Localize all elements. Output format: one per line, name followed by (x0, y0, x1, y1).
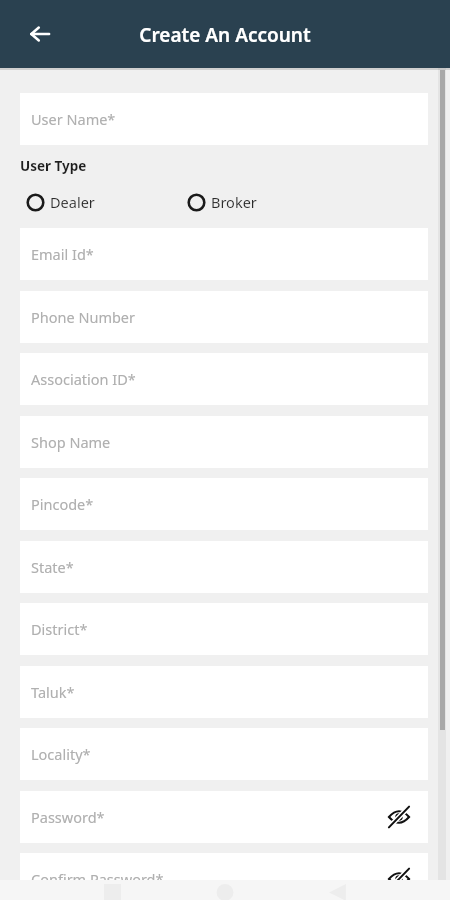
staticText: Association ID* (31, 369, 136, 389)
button[interactable]: Back (20, 14, 60, 54)
staticText: State* (31, 557, 74, 577)
button[interactable]: Confirm Password* (20, 853, 428, 900)
staticText: Phone Number (31, 307, 136, 327)
staticText: Pincode* (31, 494, 94, 514)
button[interactable]: Pincode* (20, 478, 428, 530)
staticText: Locality* (31, 744, 91, 764)
button[interactable]: Shop Name (20, 416, 428, 468)
button[interactable]: Phone Number (20, 291, 428, 343)
staticText: User Type (20, 157, 87, 175)
button[interactable]: User Name* (20, 93, 428, 145)
button[interactable]: Association ID* (20, 353, 428, 405)
button[interactable]: Toggle password visibility (384, 802, 414, 832)
staticText: Create An Account (0, 22, 450, 48)
staticText: Email Id* (31, 244, 94, 264)
staticText: Confirm Password* (31, 869, 164, 889)
staticText: Broker (211, 192, 257, 212)
staticText: District* (31, 619, 88, 639)
staticText: Shop Name (31, 432, 111, 452)
button[interactable]: Password* (20, 791, 428, 843)
staticText: Taluk* (31, 682, 75, 702)
button[interactable]: Toggle password visibility (384, 864, 414, 894)
staticText: Password* (31, 807, 105, 827)
staticText: User Name* (31, 109, 116, 129)
button[interactable]: Locality* (20, 728, 428, 780)
button[interactable]: Broker (187, 187, 257, 217)
button[interactable]: State* (20, 541, 428, 593)
button[interactable]: Dealer (26, 187, 95, 217)
button[interactable]: Email Id* (20, 228, 428, 280)
button[interactable]: District* (20, 603, 428, 655)
staticText: Dealer (50, 192, 95, 212)
button[interactable]: Taluk* (20, 666, 428, 718)
